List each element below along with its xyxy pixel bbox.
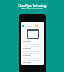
button[interactable] — [19, 14, 46, 72]
staticText: Cloud Sync Technology — [18, 4, 47, 8]
staticText: Keep Your Data Safe — [21, 7, 43, 10]
